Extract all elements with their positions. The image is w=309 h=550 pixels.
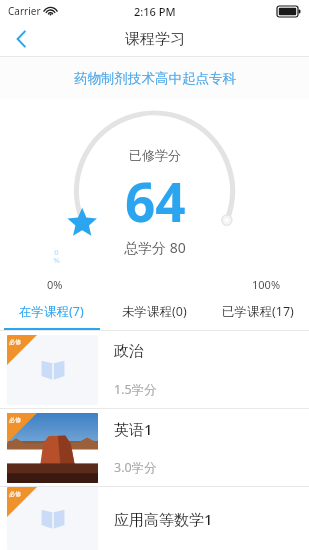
- button[interactable]: 必修: [0, 331, 309, 408]
- staticText: Carrier: [8, 4, 41, 18]
- staticText: 课程学习: [125, 30, 185, 49]
- staticText: 必修: [9, 490, 21, 498]
- staticText: 1.5学分: [114, 381, 157, 398]
- button[interactable]: 药物制剂技术高中起点专科: [74, 70, 236, 87]
- staticText: 0 %: [53, 247, 60, 265]
- staticText: 在学课程(7): [19, 303, 84, 320]
- staticText: 应用高等数学1: [114, 509, 213, 529]
- staticText: 总学分 80: [124, 238, 186, 257]
- button[interactable]: 未学课程(0): [103, 295, 206, 328]
- button[interactable]: Back: [0, 22, 42, 56]
- staticText: 3.0学分: [114, 459, 157, 476]
- staticText: 政治: [114, 342, 144, 361]
- button[interactable]: 必修: [0, 487, 309, 550]
- staticText: 2:16 PM: [134, 4, 176, 19]
- staticText: 100%: [252, 277, 281, 292]
- button[interactable]: 必修: [0, 409, 309, 486]
- button[interactable]: 已学课程(17): [206, 295, 309, 328]
- staticText: 未学课程(0): [122, 303, 187, 320]
- staticText: 已学课程(17): [222, 303, 294, 320]
- staticText: 64: [125, 165, 186, 237]
- staticText: 英语1: [114, 419, 153, 439]
- button[interactable]: 在学课程(7): [0, 295, 103, 328]
- staticText: 必修: [9, 416, 21, 424]
- staticText: 0%: [47, 277, 63, 292]
- staticText: 已修学分: [129, 147, 181, 163]
- staticText: 必修: [9, 338, 21, 346]
